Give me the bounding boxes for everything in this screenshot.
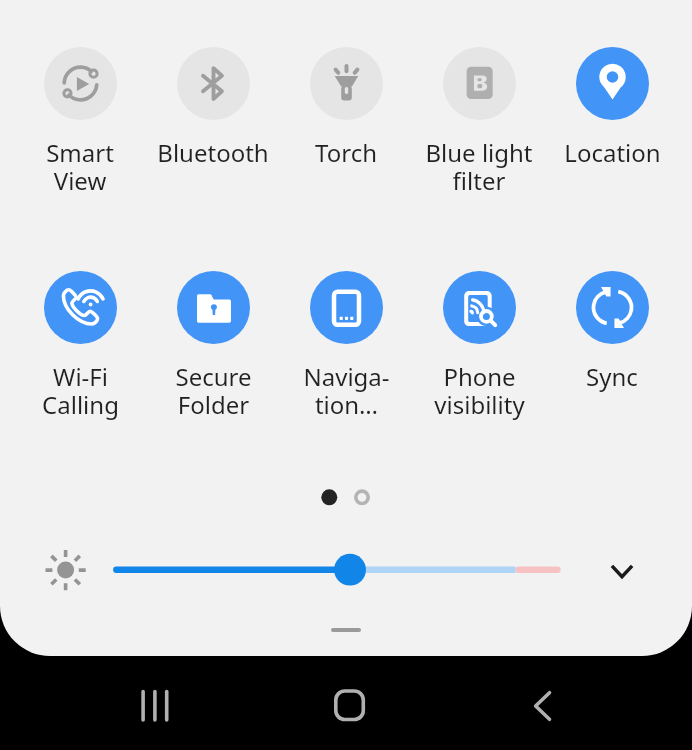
button[interactable]: Phone visibility — [413, 261, 545, 421]
button[interactable]: Torch — [280, 37, 412, 169]
staticText: Secure Folder — [175, 360, 252, 421]
button[interactable]: Recents — [125, 676, 185, 736]
staticText: Wi-Fi Calling — [42, 360, 119, 421]
button[interactable]: Blue light filter — [413, 37, 545, 197]
staticText: Naviga- tion… — [303, 360, 390, 421]
staticText: Phone visibility — [434, 360, 525, 421]
button[interactable]: Secure Folder — [147, 261, 279, 421]
button[interactable]: Smart View — [14, 37, 146, 197]
button[interactable]: Wi-Fi Calling — [14, 261, 146, 421]
button[interactable]: Back — [510, 676, 570, 736]
button[interactable]: Location — [546, 37, 678, 169]
button[interactable]: Home — [319, 676, 379, 736]
staticText: Location — [564, 136, 661, 169]
button[interactable]: Naviga- tion… — [280, 261, 412, 421]
button[interactable]: Brightness — [41, 546, 89, 594]
button[interactable]: Sync — [546, 261, 678, 393]
button[interactable]: Expand quick settings — [600, 549, 644, 593]
staticText: Blue light filter — [425, 136, 533, 197]
staticText: Bluetooth — [157, 136, 269, 169]
button[interactable]: Bluetooth — [147, 37, 279, 169]
staticText: Smart View — [46, 136, 114, 197]
staticText: Torch — [315, 136, 377, 169]
staticText: Sync — [586, 360, 638, 393]
button[interactable]: Brightness slider — [106, 550, 572, 590]
